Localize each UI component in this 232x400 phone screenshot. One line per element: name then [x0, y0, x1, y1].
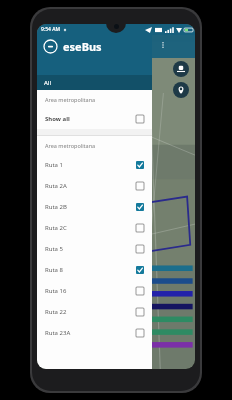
button[interactable]: Ruta 2C: [37, 217, 152, 238]
staticText: Ruta 23A: [45, 329, 71, 337]
staticText: Area metropolitana: [45, 96, 96, 103]
button[interactable]: Ruta 23A: [37, 322, 152, 343]
staticText: eseBus: [63, 39, 102, 54]
button[interactable]: Ruta 22: [37, 301, 152, 322]
staticText: Ruta 5: [45, 245, 63, 253]
staticText: All: [44, 79, 51, 87]
button[interactable]: Ruta 8: [37, 259, 152, 280]
staticText: 9:54 AM: [41, 26, 61, 33]
staticText: Ruta 8: [45, 266, 63, 274]
staticText: Ruta 22: [45, 308, 67, 316]
staticText: Ruta 1: [45, 161, 63, 169]
button[interactable]: Download offline data: [173, 61, 189, 77]
button[interactable]: Ruta 5: [37, 238, 152, 259]
button[interactable]: More options: [158, 40, 168, 50]
button[interactable]: My location: [173, 82, 189, 98]
button[interactable]: Ruta 16: [37, 280, 152, 301]
button[interactable]: Ruta 2B: [37, 196, 152, 217]
staticText: Ruta 2C: [45, 224, 67, 232]
button[interactable]: Ruta 1: [37, 154, 152, 175]
staticText: Ruta 2B: [45, 203, 67, 211]
button[interactable]: All: [37, 75, 152, 90]
button[interactable]: Ruta 2A: [37, 175, 152, 196]
staticText: Show all: [45, 115, 70, 123]
button[interactable]: Show all: [37, 108, 152, 129]
staticText: Area metropolitana: [45, 142, 96, 149]
staticText: Ruta 2A: [45, 182, 67, 190]
staticText: Ruta 16: [45, 287, 67, 295]
